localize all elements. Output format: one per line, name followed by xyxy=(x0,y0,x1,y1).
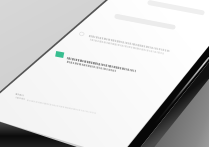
button[interactable]: Phone showing mail inbox xyxy=(0,0,209,147)
